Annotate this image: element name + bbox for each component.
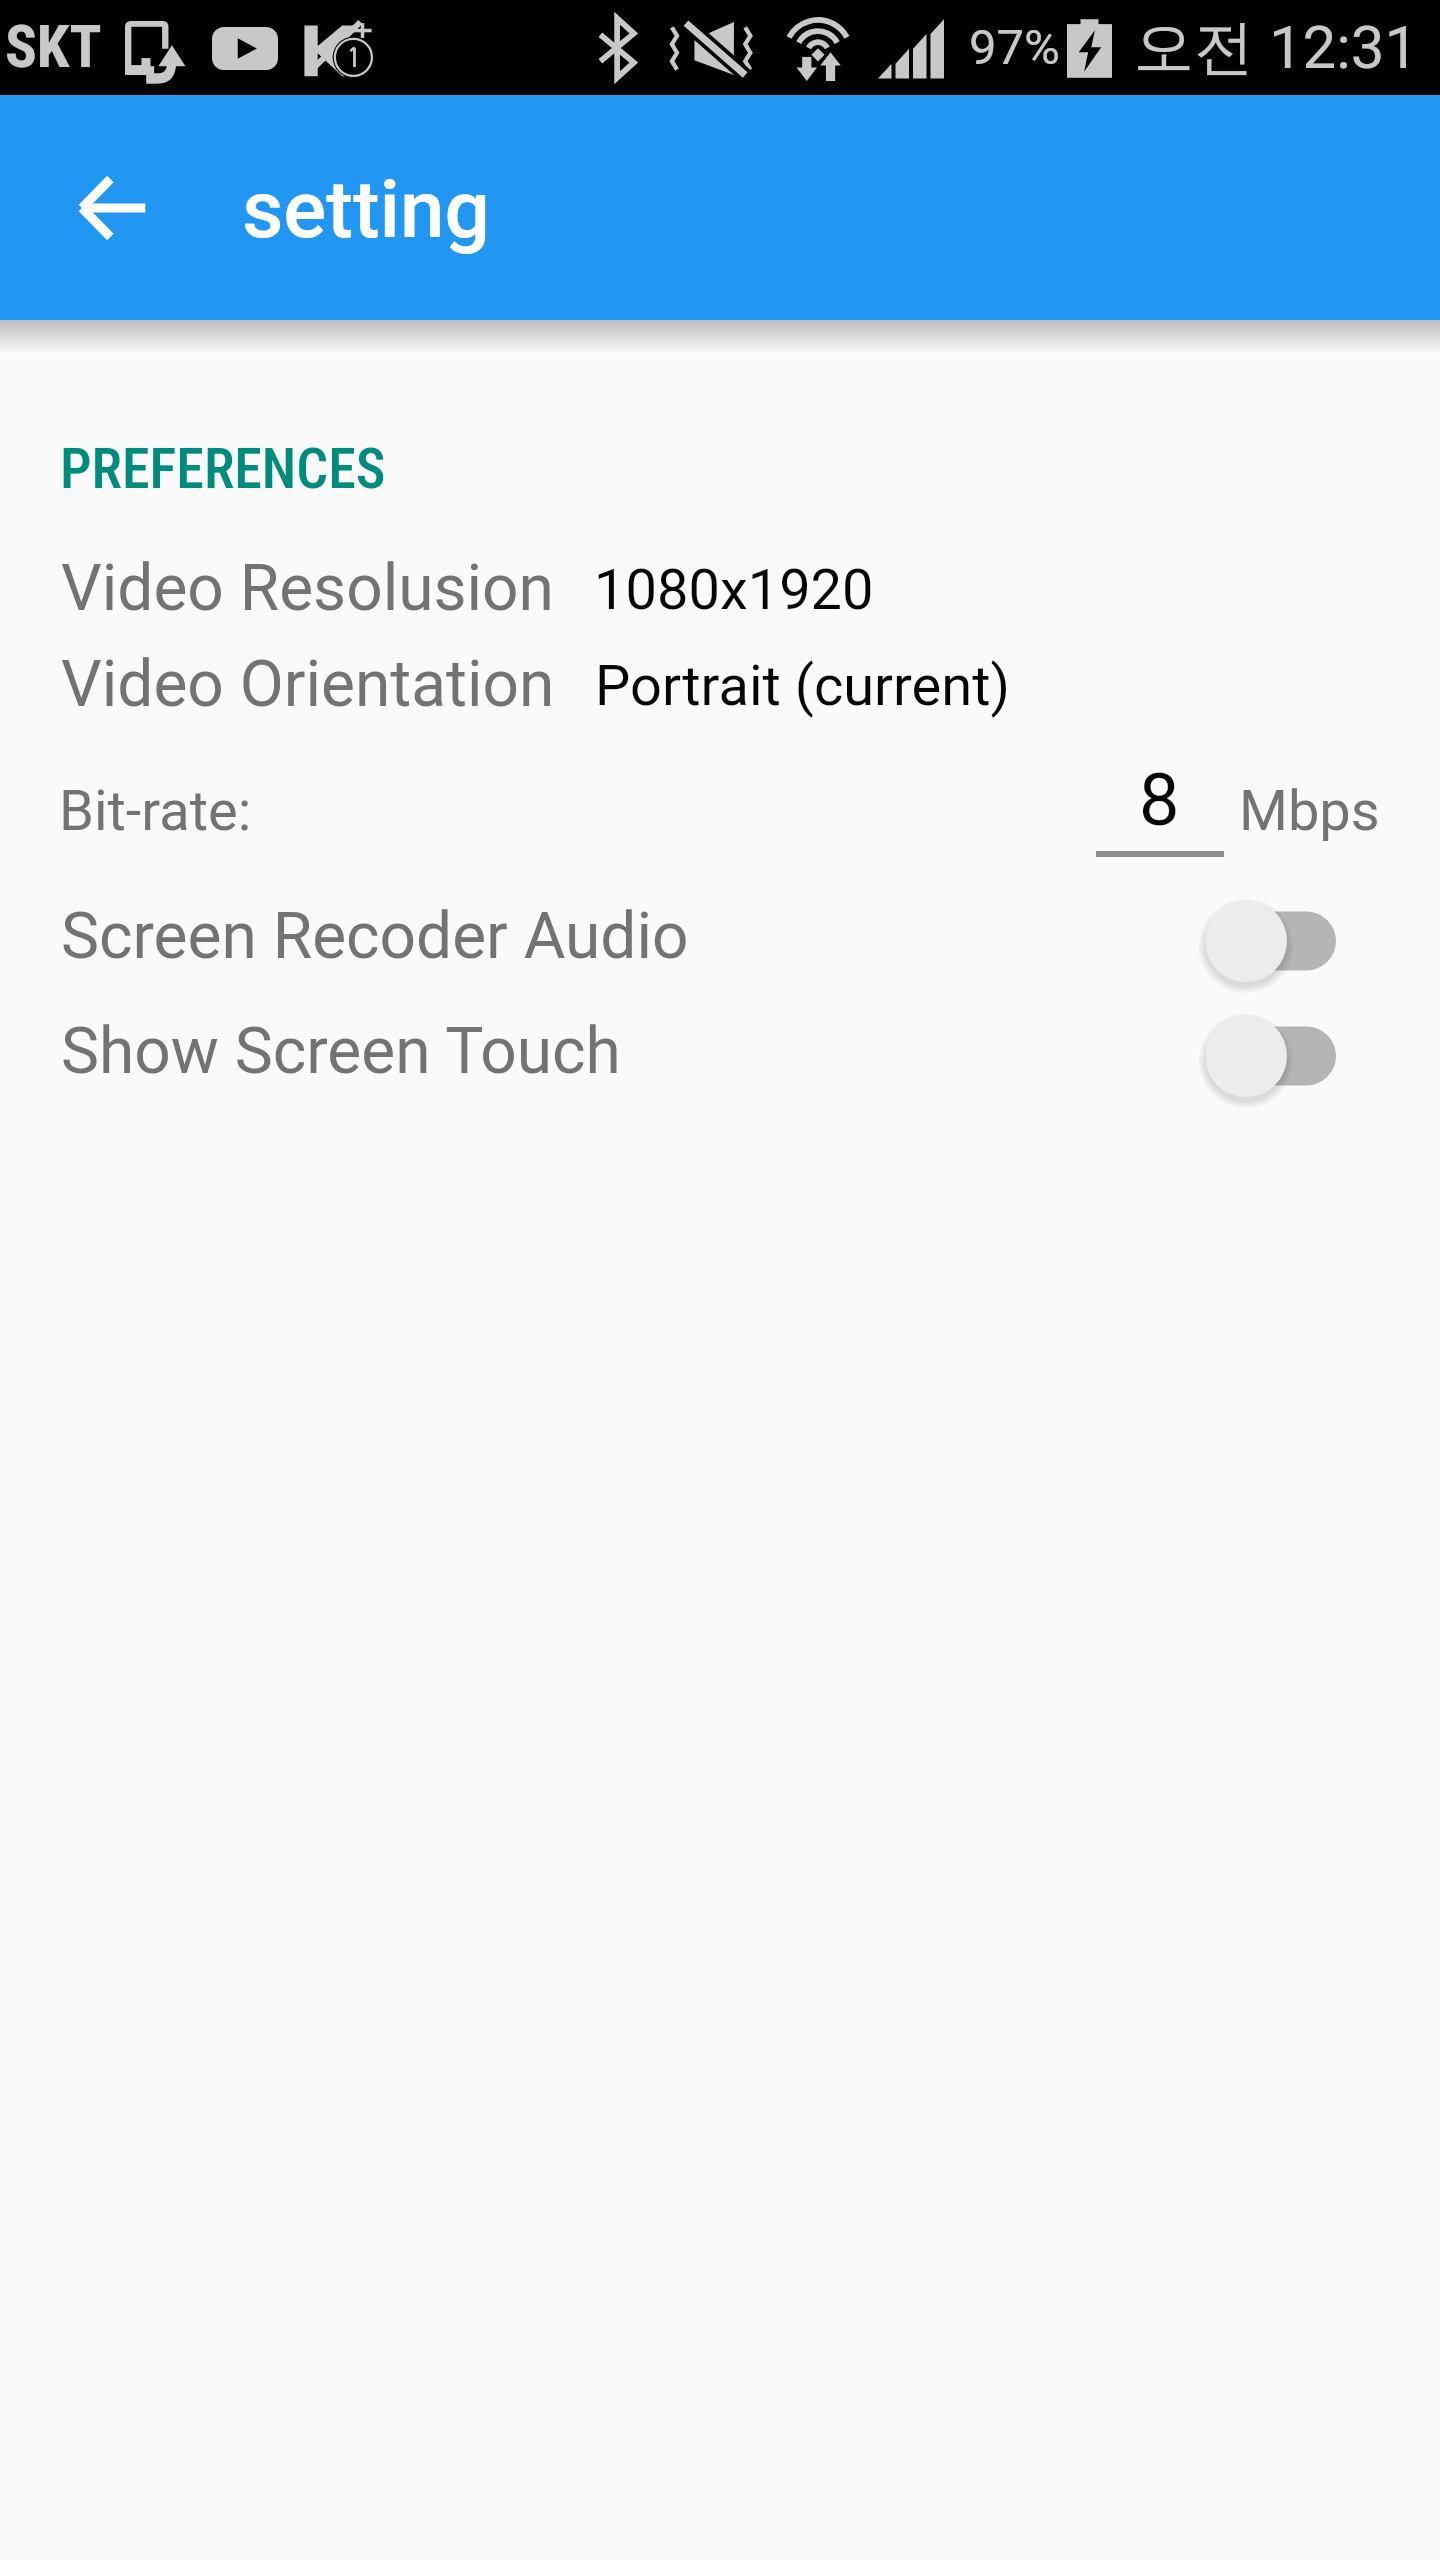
staticText: 97% [969, 19, 1060, 76]
staticText: Show Screen Touch [61, 1014, 621, 1089]
staticText: SKT [5, 12, 102, 81]
staticText: Video Orientation [61, 647, 555, 722]
button[interactable]: Screen Recoder Audio [0, 899, 1440, 1009]
staticText: Bit-rate: [59, 778, 252, 844]
button[interactable]: Video Resolusion [0, 551, 1440, 647]
staticText: 8 [1139, 758, 1180, 842]
button[interactable]: Navigate up [57, 152, 169, 264]
staticText: Video Resolusion [61, 551, 554, 626]
staticText: Portrait (current) [595, 653, 1010, 719]
button[interactable]: Show Screen Touch [0, 1014, 1440, 1124]
button[interactable]: Toggle Show Screen Touch [1196, 1005, 1346, 1107]
staticText: PREFERENCES [60, 436, 386, 502]
button[interactable]: Toggle Screen Recoder Audio [1196, 890, 1346, 992]
staticText: 1080x1920 [594, 557, 874, 623]
staticText: Screen Recoder Audio [61, 899, 689, 974]
staticText: setting [242, 163, 490, 257]
staticText: Mbps [1239, 778, 1380, 844]
staticText: 오전 12:31 [1134, 10, 1419, 86]
button[interactable]: Video Orientation [0, 647, 1440, 743]
